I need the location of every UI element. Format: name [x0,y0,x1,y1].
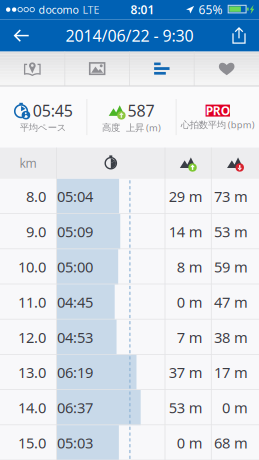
staticText: docomo [38,2,78,17]
button[interactable]: Photos [65,52,129,86]
staticText: 平均ペース [20,122,67,133]
staticText: 10.0 [18,257,46,277]
staticText: km [20,155,37,171]
staticText: 0 m [222,398,248,417]
staticText: 上昇 (m) [126,121,161,134]
staticText: 53 m [214,222,248,241]
button[interactable]: Splits [130,52,194,86]
staticText: 38 m [214,327,248,347]
staticText: 05:09 [57,222,93,241]
staticText: 59 m [214,257,248,277]
staticText: 2014/06/22 - 9:30 [65,25,193,46]
staticText: 17 m [214,363,248,382]
staticText: 73 m [214,187,248,206]
staticText: 8 m [177,257,203,277]
staticText: 0 m [177,292,203,312]
staticText: 05:03 [57,433,93,453]
staticText: 7 m [177,327,203,347]
staticText: 68 m [214,433,248,453]
staticText: 04:53 [57,327,93,347]
staticText: LTE [82,2,99,17]
staticText: PRO [206,103,230,118]
staticText: 06:19 [57,363,93,382]
staticText: 心拍数平均 (bpm) [181,118,255,131]
staticText: 14.0 [18,398,46,417]
staticText: 15.0 [18,433,46,453]
staticText: 53 m [169,398,203,417]
staticText: 0 m [177,433,203,453]
staticText: 11.0 [18,292,46,312]
staticText: 8:01 [130,2,154,17]
button[interactable]: Map [0,52,64,86]
staticText: 587 [127,100,154,121]
staticText: 14 m [169,222,203,241]
staticText: 29 m [169,187,203,206]
staticText: 13.0 [18,363,46,382]
staticText: 37 m [169,363,203,382]
staticText: 04:45 [57,292,93,312]
staticText: 65% [198,2,222,17]
staticText: 47 m [214,292,248,312]
button[interactable]: Share [219,20,259,52]
staticText: 06:37 [57,398,93,417]
button[interactable]: Back [0,20,44,52]
staticText: 05:04 [57,187,93,206]
staticText: 9.0 [26,222,46,241]
button[interactable]: Favorites [194,52,259,86]
staticText: 05:00 [57,257,93,277]
staticText: 8.0 [26,187,46,206]
staticText: 05:45 [33,100,73,121]
staticText: 高度 [102,122,120,133]
staticText: 12.0 [18,327,46,347]
